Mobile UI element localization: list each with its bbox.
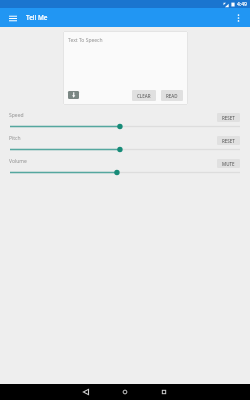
staticText: Tell Me bbox=[26, 13, 48, 22]
staticText: RESET bbox=[222, 115, 235, 121]
button[interactable]: Recents bbox=[154, 384, 174, 400]
staticText: 4:49 bbox=[237, 1, 247, 8]
staticText: Volume bbox=[9, 158, 27, 165]
staticText: CLEAR bbox=[137, 93, 151, 99]
staticText: RESET bbox=[222, 138, 235, 144]
button[interactable]: Save bbox=[66, 88, 80, 102]
staticText: MUTE bbox=[222, 161, 235, 167]
button[interactable]: More options bbox=[229, 8, 248, 27]
staticText: Pitch bbox=[9, 135, 21, 142]
button[interactable]: CLEAR bbox=[132, 90, 156, 101]
button[interactable]: MUTE bbox=[217, 159, 240, 168]
button[interactable]: Home bbox=[115, 384, 135, 400]
button[interactable]: RESET bbox=[217, 113, 240, 122]
staticText: READ bbox=[166, 93, 178, 99]
button[interactable]: READ bbox=[161, 90, 183, 101]
button[interactable]: RESET bbox=[217, 136, 240, 145]
staticText: Text To Speech bbox=[68, 37, 103, 44]
button[interactable]: Back bbox=[76, 384, 96, 400]
staticText: Speed bbox=[9, 112, 24, 119]
button[interactable]: Menu bbox=[3, 8, 22, 27]
